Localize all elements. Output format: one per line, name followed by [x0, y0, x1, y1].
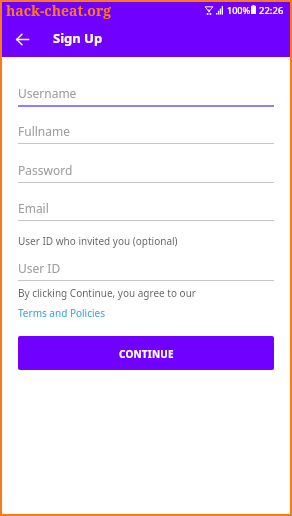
button[interactable]: Fullname	[18, 117, 274, 145]
staticText: 22:26	[259, 4, 284, 17]
button[interactable]: Password	[18, 156, 274, 184]
staticText: CONTINUE	[119, 347, 174, 361]
staticText: 100%	[227, 4, 251, 16]
staticText: By clicking Continue, you agree to our	[18, 286, 196, 300]
staticText: Fullname	[18, 123, 70, 139]
button[interactable]: Back	[7, 24, 37, 54]
staticText: User ID who invited you (optional)	[18, 234, 178, 248]
staticText: hack-cheat.org	[6, 1, 112, 20]
staticText: Email	[18, 200, 49, 216]
button[interactable]: Terms and Policies	[18, 306, 105, 320]
button[interactable]: User ID	[18, 254, 274, 282]
button[interactable]: CONTINUE	[18, 336, 274, 370]
button[interactable]: Username	[18, 79, 274, 107]
staticText: Username	[18, 85, 77, 101]
staticText: Password	[18, 162, 73, 178]
staticText: Sign Up	[53, 29, 103, 47]
button[interactable]: Email	[18, 194, 274, 222]
staticText: User ID	[18, 260, 61, 276]
